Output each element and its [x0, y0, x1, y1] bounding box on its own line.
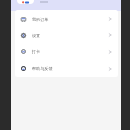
other: 我的订单: [21, 17, 26, 22]
staticText: 设置: [32, 33, 41, 38]
other: 打卡: [21, 49, 26, 54]
staticText: 打卡: [32, 49, 41, 54]
staticText: 帮助与反馈: [32, 66, 53, 71]
staticText: 我的订单: [32, 17, 49, 22]
other: 帮助与反馈: [21, 66, 26, 71]
button[interactable]: 帮助与反馈: [15, 60, 118, 77]
button[interactable]: 我的订单: [15, 11, 118, 27]
other: 设置: [21, 33, 26, 38]
button[interactable]: 设置: [15, 27, 118, 43]
button[interactable]: 打卡: [15, 43, 118, 60]
